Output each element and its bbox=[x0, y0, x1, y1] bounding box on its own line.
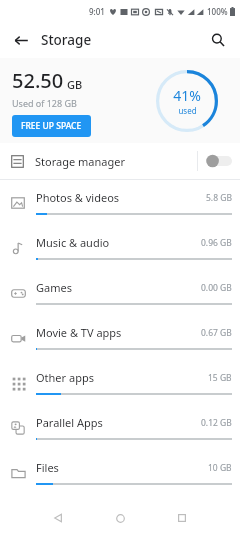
staticText: Photos & videos bbox=[36, 190, 120, 205]
button[interactable]: Storage manager bbox=[0, 143, 240, 179]
staticText: 0.67 GB bbox=[201, 327, 232, 339]
button[interactable]: Search bbox=[203, 25, 233, 55]
staticText: Used of 128 GB bbox=[12, 97, 77, 109]
staticText: 10 GB bbox=[208, 462, 232, 474]
staticText: 0.12 GB bbox=[201, 417, 232, 429]
staticText: Parallel Apps bbox=[36, 415, 103, 430]
staticText: Games bbox=[36, 280, 72, 295]
button[interactable]: FREE UP SPACE bbox=[12, 115, 91, 137]
button[interactable]: Parallel Apps bbox=[0, 405, 240, 450]
staticText: Storage manager bbox=[35, 154, 125, 169]
staticText: used bbox=[178, 105, 197, 116]
staticText: 0.96 GB bbox=[201, 237, 232, 249]
staticText: FREE UP SPACE bbox=[21, 120, 82, 132]
staticText: GB bbox=[67, 77, 83, 92]
button[interactable]: Back bbox=[45, 505, 71, 531]
staticText: 52.50 bbox=[12, 67, 64, 94]
staticText: 9:01 bbox=[89, 6, 105, 17]
staticText: Storage bbox=[41, 31, 92, 49]
button[interactable]: Music & audio bbox=[0, 225, 240, 270]
staticText: 100% bbox=[207, 6, 228, 17]
button[interactable]: Photos & videos bbox=[0, 180, 240, 225]
button[interactable]: Movie & TV apps bbox=[0, 315, 240, 360]
button[interactable]: Home bbox=[107, 505, 133, 531]
button[interactable]: Games bbox=[0, 270, 240, 315]
staticText: Other apps bbox=[36, 370, 94, 385]
staticText: 41% bbox=[173, 86, 201, 105]
staticText: Music & audio bbox=[36, 235, 110, 250]
button[interactable]: Storage manager toggle, off bbox=[198, 143, 240, 179]
staticText: Movie & TV apps bbox=[36, 325, 122, 340]
staticText: 15 GB bbox=[208, 372, 232, 384]
button[interactable]: Files bbox=[0, 450, 240, 495]
button[interactable]: Other apps bbox=[0, 360, 240, 405]
button[interactable]: Back bbox=[6, 25, 36, 55]
staticText: 0.00 GB bbox=[201, 282, 232, 294]
staticText: Files bbox=[36, 460, 59, 475]
button[interactable]: Recent apps bbox=[169, 505, 195, 531]
staticText: 5.8 GB bbox=[206, 192, 232, 204]
